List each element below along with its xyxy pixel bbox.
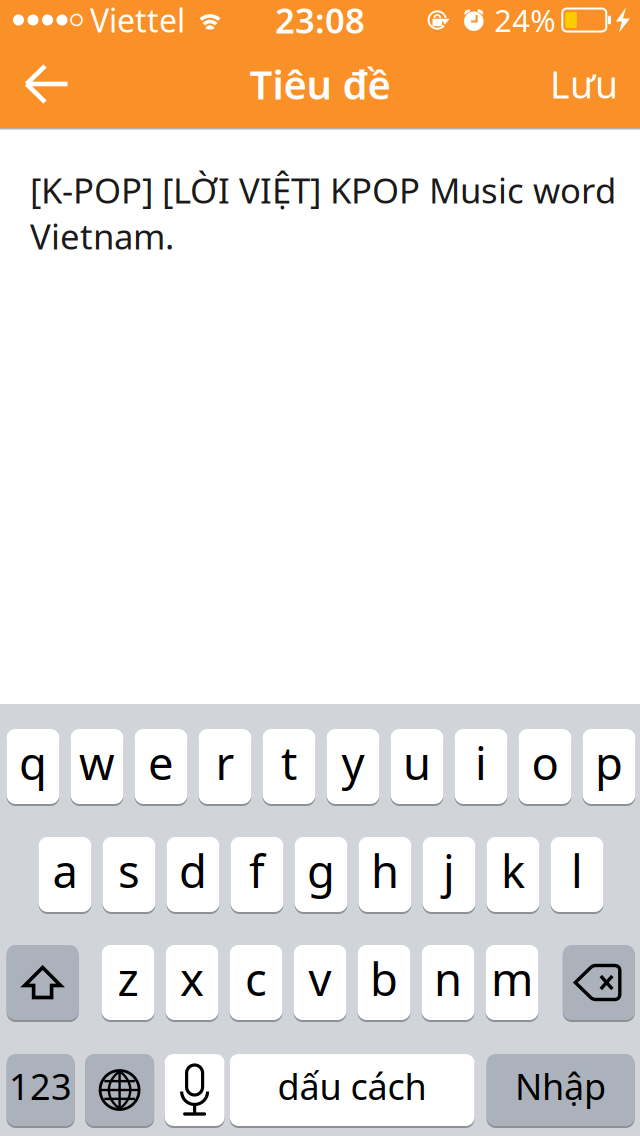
button[interactable]: k <box>487 836 539 913</box>
button[interactable]: Back <box>0 44 88 124</box>
button[interactable]: Nhập <box>487 1053 635 1127</box>
staticText: d <box>179 840 207 901</box>
staticText: Lưu <box>550 59 618 109</box>
staticText: g <box>307 840 335 901</box>
button[interactable]: y <box>327 728 379 805</box>
staticText: x <box>180 948 204 1009</box>
staticText: 24% <box>494 0 555 40</box>
staticText: s <box>118 840 140 901</box>
staticText: f <box>249 840 265 901</box>
staticText: Nhập <box>515 1062 606 1110</box>
staticText: h <box>371 840 399 901</box>
button[interactable]: 123 <box>7 1053 75 1127</box>
button[interactable]: s <box>103 836 155 913</box>
staticText: p <box>595 732 623 793</box>
staticText: 123 <box>9 1062 72 1110</box>
staticText: b <box>370 948 398 1009</box>
staticText: a <box>52 840 77 901</box>
button[interactable]: Shift <box>7 944 79 1021</box>
staticText: j <box>443 840 455 901</box>
button[interactable]: dấu cách <box>230 1053 475 1127</box>
button[interactable]: c <box>230 944 282 1021</box>
button[interactable]: f <box>231 836 283 913</box>
staticText: Tiêu đề <box>249 57 390 110</box>
button[interactable]: i <box>455 728 507 805</box>
staticText: r <box>215 732 234 793</box>
staticText: v <box>308 948 331 1009</box>
staticText: z <box>117 948 138 1009</box>
button[interactable]: q <box>7 728 59 805</box>
button[interactable]: r <box>199 728 251 805</box>
staticText: n <box>434 948 462 1009</box>
staticText: e <box>148 732 174 793</box>
staticText: i <box>475 732 487 793</box>
button[interactable]: w <box>71 728 123 805</box>
staticText: dấu cách <box>278 1062 427 1110</box>
button[interactable]: l <box>551 836 603 913</box>
button[interactable]: Dictation <box>165 1053 225 1127</box>
button[interactable]: a <box>39 836 91 913</box>
button[interactable]: n <box>422 944 474 1021</box>
button[interactable]: d <box>167 836 219 913</box>
staticText: k <box>501 840 525 901</box>
staticText: Viettel <box>90 0 185 41</box>
staticText: m <box>491 948 533 1009</box>
button[interactable]: t <box>263 728 315 805</box>
button[interactable]: h <box>359 836 411 913</box>
staticText: l <box>571 840 583 901</box>
staticText: o <box>531 732 558 793</box>
button[interactable]: b <box>358 944 410 1021</box>
staticText: [K-POP] [LỜI VIỆT] KPOP Music word Vietn… <box>30 167 616 259</box>
button[interactable]: m <box>486 944 538 1021</box>
button[interactable]: Delete <box>563 944 635 1021</box>
button[interactable]: e <box>135 728 187 805</box>
staticText: u <box>403 732 431 793</box>
staticText: q <box>19 732 47 793</box>
staticText: y <box>341 732 364 793</box>
staticText: t <box>281 732 297 793</box>
staticText: c <box>245 948 267 1009</box>
button[interactable]: v <box>294 944 346 1021</box>
button[interactable]: u <box>391 728 443 805</box>
button[interactable]: z <box>102 944 154 1021</box>
button[interactable]: p <box>583 728 635 805</box>
button[interactable]: g <box>295 836 347 913</box>
button[interactable]: x <box>166 944 218 1021</box>
button[interactable]: Lưu <box>524 37 640 131</box>
staticText: 23:08 <box>275 0 365 43</box>
button[interactable]: Next keyboard <box>85 1053 154 1127</box>
button[interactable]: j <box>423 836 475 913</box>
button[interactable]: o <box>519 728 571 805</box>
staticText: w <box>79 732 115 793</box>
